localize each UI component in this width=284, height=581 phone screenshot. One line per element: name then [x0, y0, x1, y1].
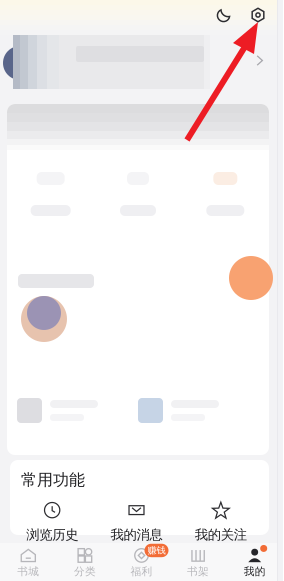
button[interactable]: 我的消息: [94, 501, 179, 543]
button[interactable]: 浏览历史: [10, 501, 94, 543]
staticText: 书架: [187, 565, 209, 578]
staticText: 我的: [244, 565, 266, 578]
button[interactable]: [0, 34, 283, 90]
button[interactable]: 赚钱: [113, 541, 170, 581]
staticText: 赚钱: [147, 545, 165, 556]
button[interactable]: 分类: [57, 541, 113, 581]
staticText: 浏览历史: [26, 527, 78, 543]
button[interactable]: 书架: [170, 541, 226, 581]
button[interactable]: 我的: [226, 541, 283, 581]
staticText: 我的消息: [110, 527, 162, 543]
staticText: 福利: [130, 565, 152, 578]
button[interactable]: 书城: [0, 541, 57, 581]
staticText: 常用功能: [21, 470, 85, 490]
staticText: 书城: [17, 565, 39, 578]
staticText: 我的关注: [195, 527, 247, 543]
staticText: 分类: [74, 565, 96, 578]
button[interactable]: Settings: [246, 3, 270, 27]
button[interactable]: Dark mode: [212, 3, 236, 27]
button[interactable]: 我的关注: [179, 501, 263, 543]
